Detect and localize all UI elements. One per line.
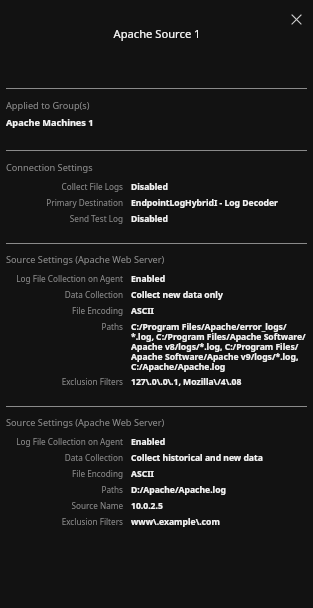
staticText: Primary Destination: [46, 197, 123, 208]
button[interactable]: Collect File Logs: [0, 179, 313, 195]
button[interactable]: Exclusion Filters: [0, 374, 313, 390]
button[interactable]: Close: [287, 10, 305, 28]
button[interactable]: Send Test Log: [0, 211, 313, 227]
staticText: File Encoding: [72, 468, 123, 479]
staticText: File Encoding: [72, 305, 123, 316]
button[interactable]: Source Name: [0, 498, 313, 514]
staticText: Collect new data only: [131, 289, 307, 301]
staticText: Send Test Log: [69, 213, 123, 224]
staticText: Data Collection: [64, 289, 123, 300]
staticText: Source Name: [71, 500, 123, 511]
staticText: Disabled: [131, 181, 307, 193]
button[interactable]: File Encoding: [0, 303, 313, 319]
staticText: Source Settings (Apache Web Server): [6, 253, 165, 266]
button[interactable]: File Encoding: [0, 466, 313, 482]
staticText: www\.example\.com: [131, 516, 307, 528]
button[interactable]: Data Collection: [0, 287, 313, 303]
staticText: Paths: [101, 484, 123, 495]
staticText: Collect historical and new data: [131, 452, 307, 464]
staticText: ASCII: [131, 305, 307, 317]
staticText: EndpointLogHybridI - Log Decoder: [131, 197, 307, 209]
button[interactable]: Paths: [0, 482, 313, 498]
staticText: Source Settings (Apache Web Server): [6, 416, 165, 429]
staticText: Log File Collection on Agent: [16, 273, 123, 284]
staticText: Enabled: [131, 273, 307, 285]
staticText: Apache Source 1: [113, 26, 201, 41]
staticText: 127\.0\.0\.1, Mozilla\/4\.08: [131, 376, 307, 388]
staticText: Exclusion Filters: [61, 376, 123, 387]
staticText: Connection Settings: [6, 161, 93, 174]
staticText: Apache Machines 1: [6, 116, 94, 129]
staticText: Data Collection: [64, 452, 123, 463]
staticText: Paths: [101, 321, 123, 332]
staticText: Exclusion Filters: [61, 516, 123, 527]
button[interactable]: Log File Collection on Agent: [0, 434, 313, 450]
staticText: C:/Program Files/Apache/error_logs/*.log…: [131, 321, 307, 372]
button[interactable]: Primary Destination: [0, 195, 313, 211]
staticText: ASCII: [131, 468, 307, 480]
button[interactable]: Exclusion Filters: [0, 514, 313, 530]
button[interactable]: Paths: [0, 319, 313, 374]
staticText: D:/Apache/Apache.log: [131, 484, 307, 496]
button[interactable]: Data Collection: [0, 450, 313, 466]
staticText: Applied to Group(s): [6, 99, 90, 112]
staticText: Collect File Logs: [61, 181, 123, 192]
staticText: Enabled: [131, 436, 307, 448]
button[interactable]: Log File Collection on Agent: [0, 271, 313, 287]
staticText: Log File Collection on Agent: [16, 436, 123, 447]
staticText: 10.0.2.5: [131, 500, 307, 512]
staticText: Disabled: [131, 213, 307, 225]
